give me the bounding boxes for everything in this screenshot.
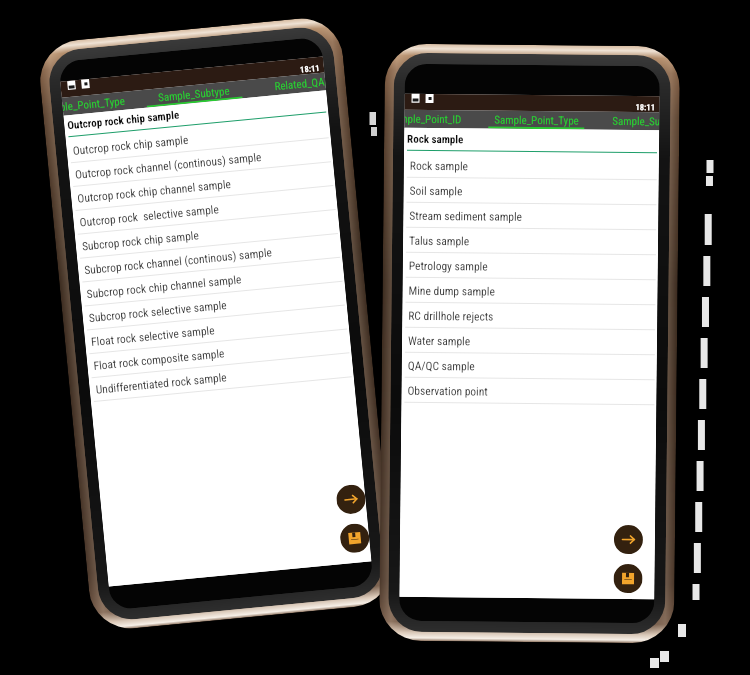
staticText: Float rock composite sample bbox=[93, 346, 225, 372]
staticText: Outcrop rock selective sample bbox=[79, 202, 220, 229]
button[interactable]: Float rock composite sample bbox=[92, 329, 351, 377]
button[interactable]: Talus sample bbox=[409, 228, 658, 254]
button[interactable]: Stream sediment sample bbox=[409, 203, 658, 229]
button[interactable]: Sample_Subtype bbox=[137, 80, 250, 108]
button[interactable]: Outcrop rock selective sample bbox=[79, 186, 338, 233]
staticText: Related_QAQC bbox=[274, 75, 326, 93]
staticText: Subcrop rock channel (continous) sample bbox=[84, 245, 273, 276]
staticText: Stream sediment sample bbox=[409, 209, 522, 223]
staticText: Rock sample bbox=[410, 159, 469, 172]
button[interactable]: Subcrop rock selective sample bbox=[88, 281, 347, 329]
staticText: Petrology sample bbox=[409, 259, 488, 272]
staticText: Sample_Point_ID bbox=[404, 113, 461, 126]
staticText: Observation point bbox=[407, 384, 488, 397]
button[interactable]: QA/QC sample bbox=[408, 353, 657, 379]
staticText: Outcrop rock chip sample bbox=[72, 133, 189, 157]
button[interactable]: Next bbox=[335, 483, 367, 515]
staticText: QA/QC sample bbox=[408, 359, 475, 372]
staticText: Sample_Subtype bbox=[612, 115, 659, 128]
staticText: Subcrop rock chip channel sample bbox=[86, 272, 242, 300]
staticText: Soil sample bbox=[409, 184, 463, 197]
button[interactable]: Subcrop rock channel (continous) sample bbox=[83, 234, 342, 281]
button[interactable]: Sample_Subtype bbox=[592, 112, 659, 130]
button[interactable]: Undifferentiated rock sample bbox=[95, 353, 354, 401]
staticText: Float rock selective sample bbox=[90, 323, 215, 348]
staticText: RC drillhole rejects bbox=[408, 309, 494, 323]
staticText: Sample_Point_Type bbox=[62, 95, 126, 114]
button[interactable]: Subcrop rock chip channel sample bbox=[85, 258, 344, 305]
staticText: Undifferentiated rock sample bbox=[95, 370, 228, 396]
button[interactable]: Float rock selective sample bbox=[90, 305, 349, 353]
button[interactable]: Sample_Point_Type bbox=[62, 90, 139, 116]
staticText: Talus sample bbox=[409, 234, 470, 247]
button[interactable]: Subcrop rock chip sample bbox=[81, 210, 340, 257]
button[interactable]: Related_QAQC bbox=[249, 72, 326, 98]
button[interactable]: Outcrop rock channel (continous) sample bbox=[74, 138, 333, 186]
button[interactable]: Soil sample bbox=[409, 178, 659, 204]
button[interactable]: Outcrop rock chip channel sample bbox=[76, 162, 335, 210]
button[interactable]: Save bbox=[613, 564, 643, 593]
button[interactable]: Water sample bbox=[408, 328, 657, 354]
button[interactable]: Sample_Point_ID bbox=[404, 110, 480, 128]
staticText: Sample_Subtype bbox=[157, 85, 230, 104]
button[interactable]: Observation point bbox=[407, 378, 657, 404]
staticText: 18:11 bbox=[300, 63, 320, 75]
button[interactable]: Sample_Point_Type bbox=[480, 110, 592, 130]
staticText: Mine dump sample bbox=[408, 284, 496, 298]
staticText: Subcrop rock selective sample bbox=[88, 298, 228, 324]
button[interactable]: RC drillhole rejects bbox=[408, 303, 657, 329]
staticText: Outcrop rock channel (continous) sample bbox=[74, 150, 263, 181]
staticText: Subcrop rock chip sample bbox=[81, 228, 200, 252]
staticText: 18:11 bbox=[635, 102, 655, 112]
button[interactable]: Outcrop rock chip sample bbox=[72, 114, 331, 162]
button[interactable]: Next bbox=[614, 525, 643, 554]
button[interactable]: Mine dump sample bbox=[408, 278, 658, 304]
button[interactable]: Petrology sample bbox=[409, 253, 658, 279]
staticText: Outcrop rock chip channel sample bbox=[77, 177, 232, 205]
staticText: Water sample bbox=[408, 334, 471, 347]
button[interactable]: Rock sample bbox=[410, 153, 659, 179]
staticText: Sample_Point_Type bbox=[494, 114, 579, 127]
staticText: Outcrop rock chip sample bbox=[67, 108, 180, 132]
button[interactable]: Save bbox=[339, 522, 370, 554]
staticText: Rock sample bbox=[407, 133, 464, 146]
